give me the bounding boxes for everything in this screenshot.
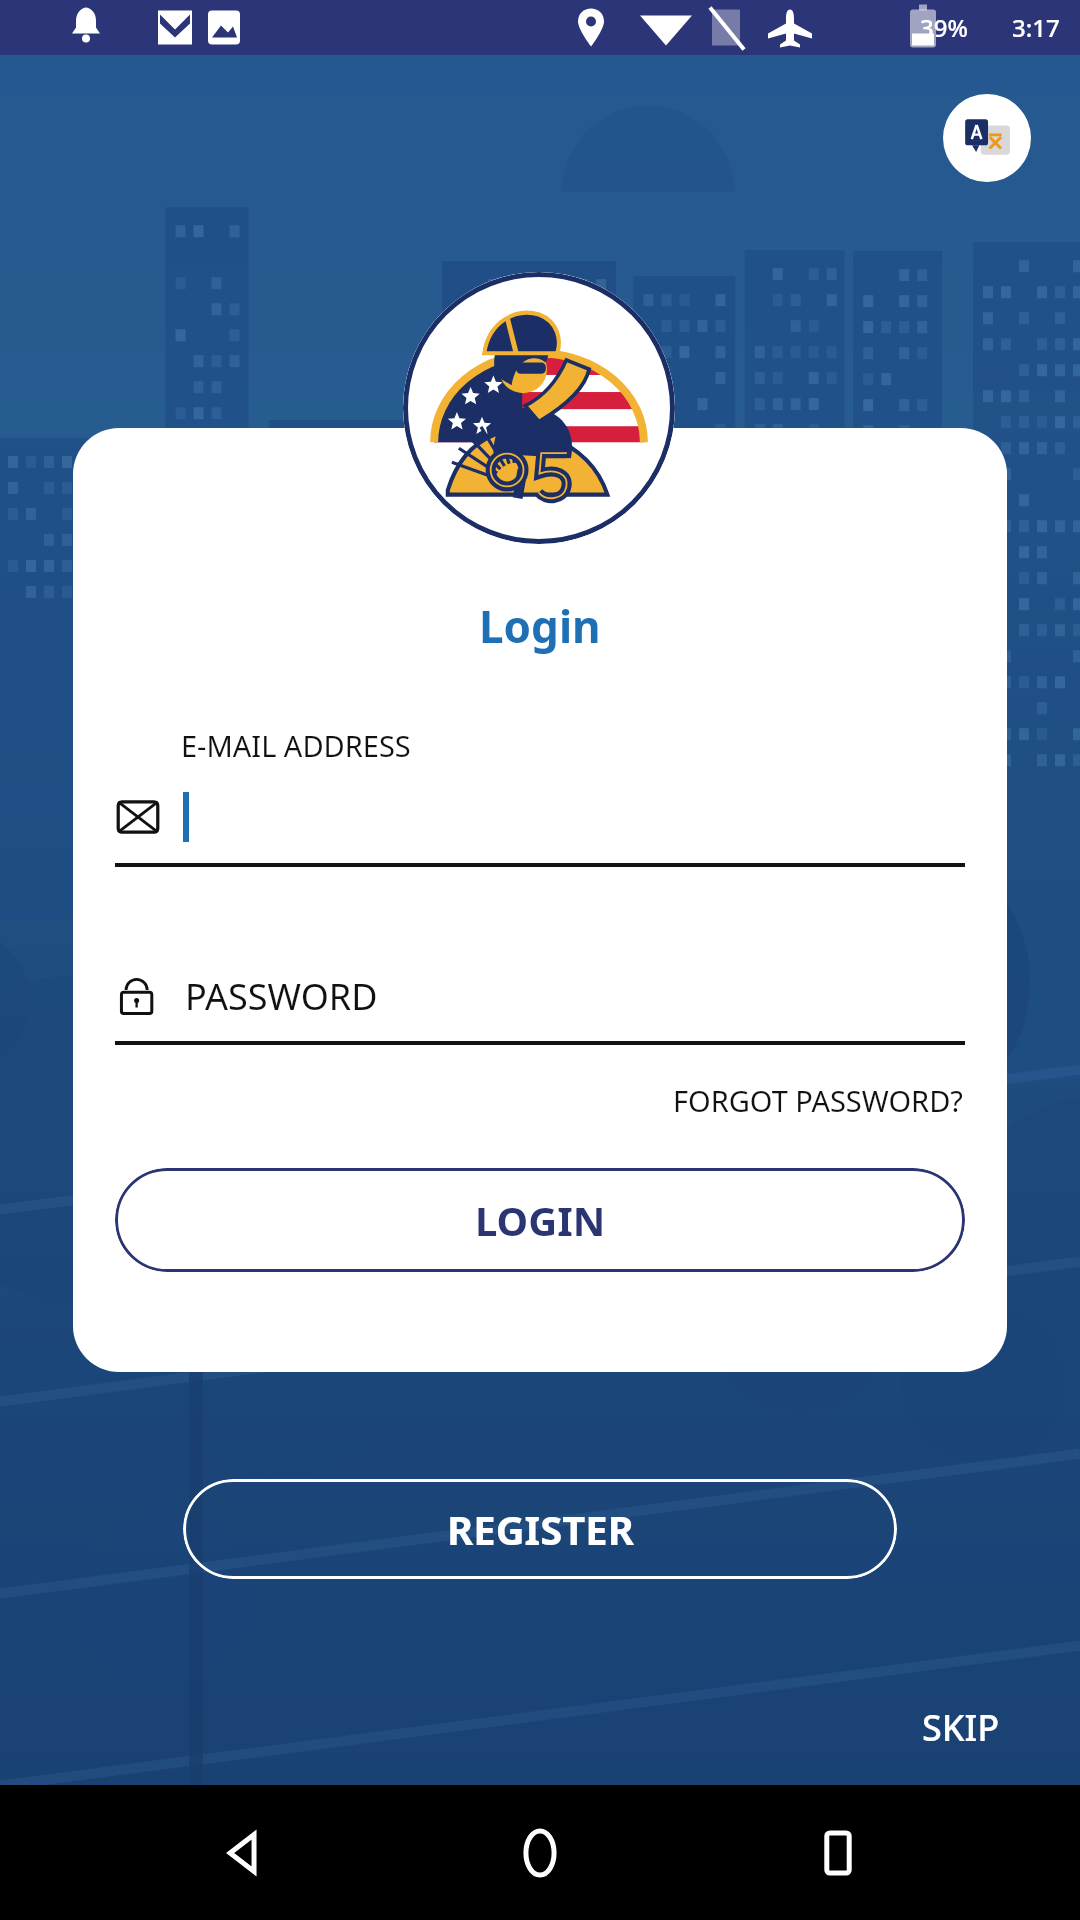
button[interactable]: SKIP xyxy=(912,1693,1010,1762)
button[interactable]: FORGOT PASSWORD? xyxy=(667,1075,969,1126)
staticText: 3:17 xyxy=(1012,11,1060,44)
staticText: PASSWORD xyxy=(185,972,378,1021)
button[interactable]: PASSWORD xyxy=(115,961,965,1031)
staticText: LOGIN xyxy=(475,1193,606,1247)
staticText: Login xyxy=(479,596,601,656)
staticText: E-MAIL ADDRESS xyxy=(181,726,411,765)
staticText: REGISTER xyxy=(447,1502,634,1556)
button[interactable]: Home xyxy=(485,1798,595,1908)
staticText: SKIP xyxy=(922,1703,1000,1752)
button[interactable]: LOGIN xyxy=(115,1168,965,1272)
staticText: FORGOT PASSWORD? xyxy=(673,1081,963,1120)
button[interactable]: Recent apps xyxy=(783,1798,893,1908)
button[interactable]: Back xyxy=(188,1798,298,1908)
button[interactable]: REGISTER xyxy=(183,1479,897,1579)
button[interactable]: Translate xyxy=(943,94,1031,182)
button[interactable] xyxy=(115,785,965,849)
staticText: 39% xyxy=(920,11,968,44)
